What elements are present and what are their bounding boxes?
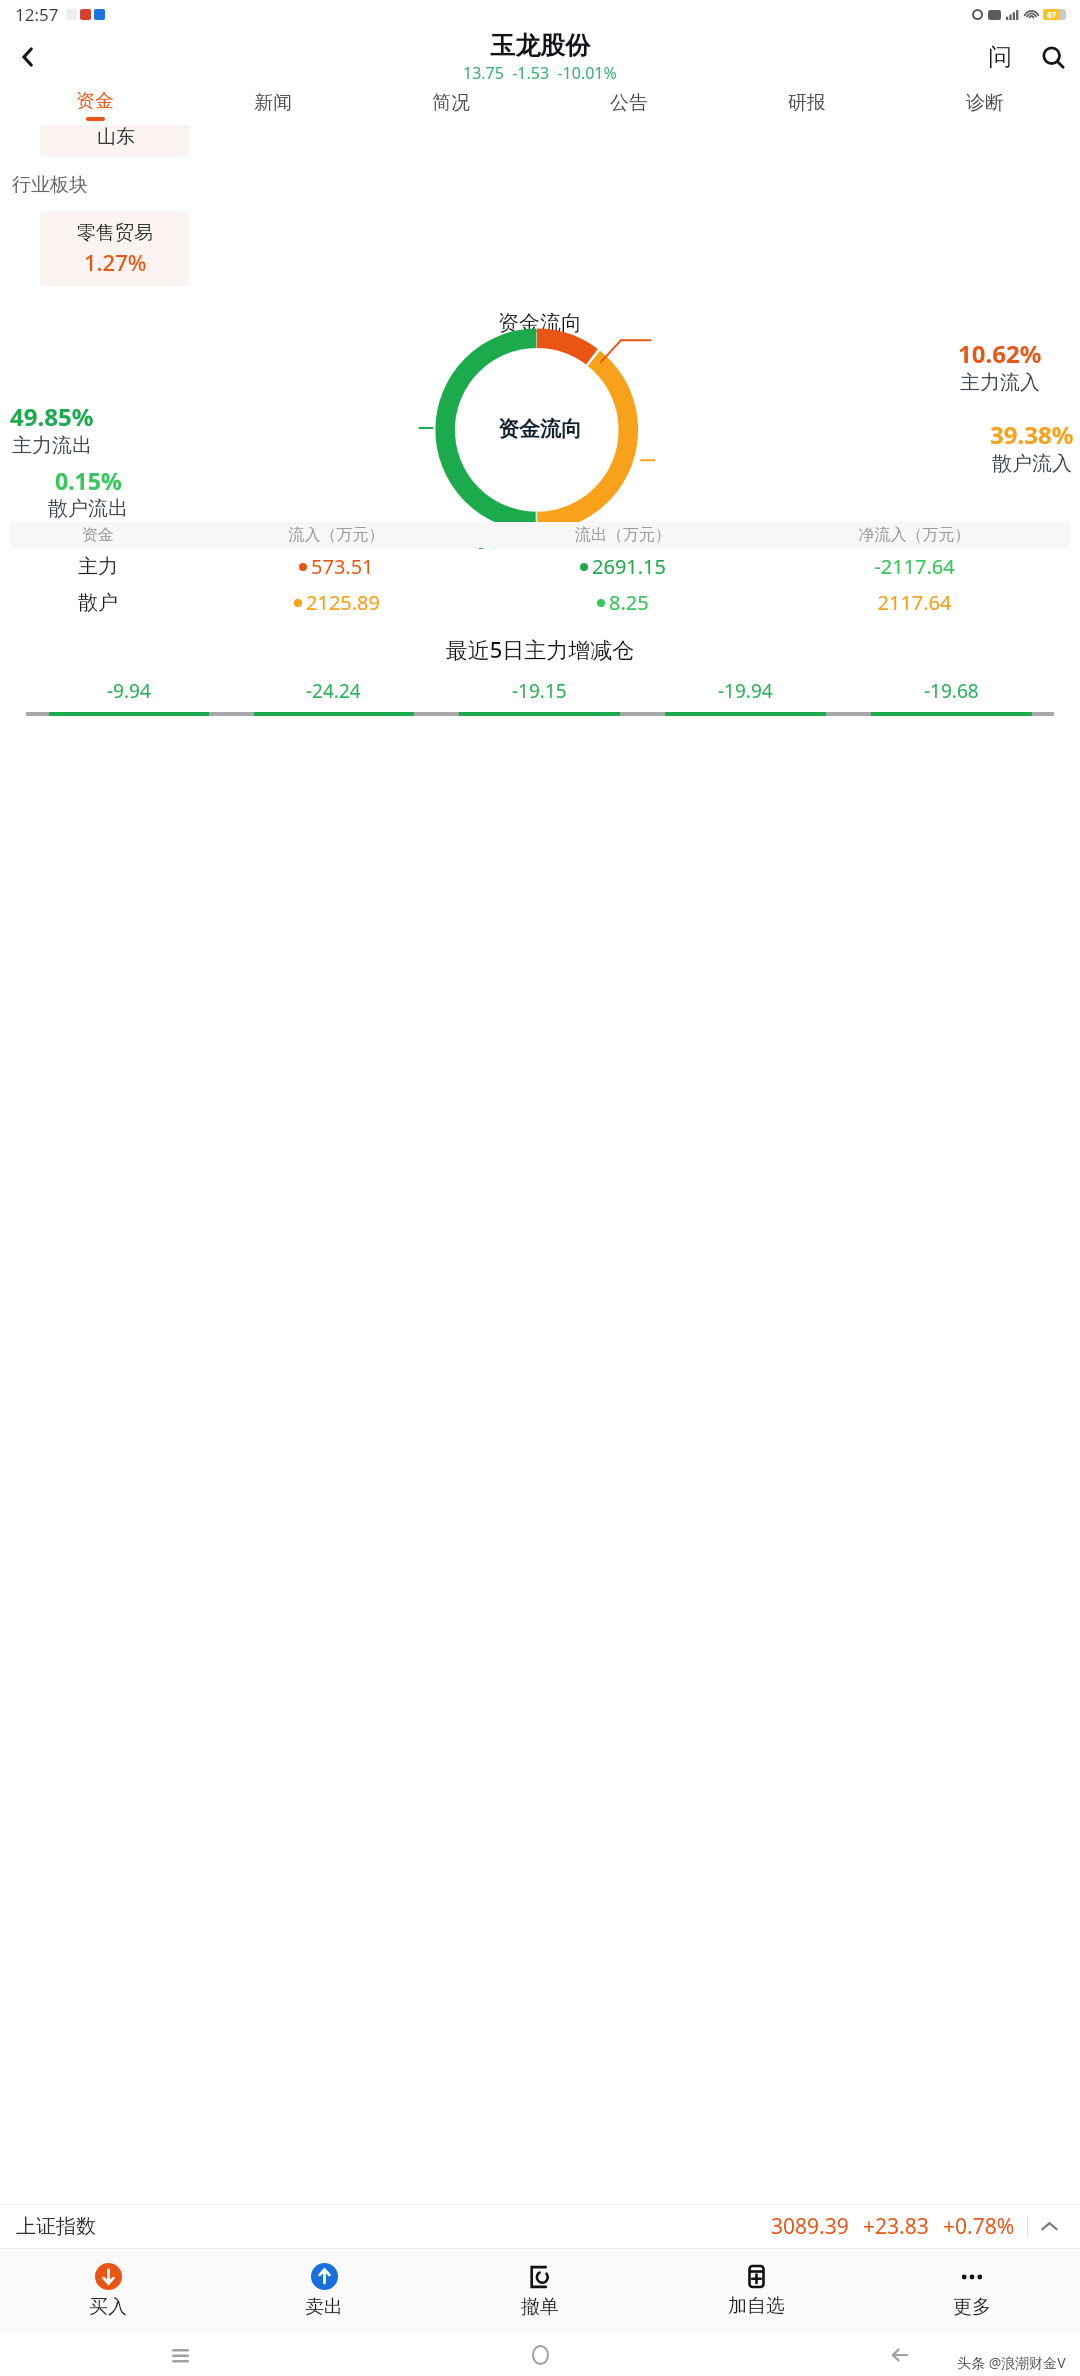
staticText: -19.15 [512, 678, 567, 704]
staticText: 3089.39 [771, 2212, 849, 2241]
staticText: +23.83 [863, 2212, 929, 2241]
staticText: -24.24 [306, 678, 361, 704]
button[interactable]: 买入 [0, 2248, 216, 2334]
staticText: 诊断 [966, 91, 1004, 115]
staticText: 主力流入 [960, 370, 1040, 395]
staticText: 净流入（万元） [759, 525, 1070, 545]
staticText: -2117.64 [759, 553, 1070, 580]
staticText: 49.85% [10, 400, 94, 433]
staticText: 散户流入 [992, 451, 1072, 476]
staticText: 山东 [97, 125, 135, 149]
staticText: 公告 [610, 91, 648, 115]
button[interactable]: Ask [974, 31, 1026, 83]
staticText: 新闻 [254, 91, 292, 115]
staticText: 头条 @浪潮财金V [957, 2353, 1066, 2372]
staticText: 流入（万元） [186, 525, 487, 545]
staticText: 1.27% [84, 247, 147, 277]
button[interactable]: 新闻 [184, 85, 362, 125]
staticText: 12:57 [15, 3, 59, 26]
button[interactable]: 山东 [40, 125, 190, 157]
staticText: 10.62% [958, 337, 1042, 370]
button[interactable]: 公告 [540, 85, 718, 125]
staticText: 问 [988, 42, 1012, 72]
staticText: 2691.15 [592, 553, 666, 580]
button[interactable]: 零售贸易 [40, 211, 190, 286]
staticText: 主力流出 [12, 433, 92, 458]
button[interactable]: 撤单 [432, 2248, 648, 2334]
staticText: -19.68 [924, 678, 979, 704]
staticText: 买入 [89, 2295, 127, 2319]
staticText: 零售贸易 [77, 221, 153, 245]
button[interactable]: 简况 [362, 85, 540, 125]
button[interactable]: Home [360, 2334, 720, 2376]
staticText: 主力 [10, 554, 186, 579]
staticText: 散户 [10, 590, 186, 615]
staticText: -9.94 [107, 678, 151, 704]
button[interactable]: Back [720, 2334, 1080, 2376]
staticText: 资金 [76, 89, 114, 113]
staticText: 0.15% [55, 465, 122, 496]
staticText: +0.78% [943, 2212, 1015, 2241]
staticText: 卖出 [305, 2295, 343, 2319]
staticText: 加自选 [728, 2294, 785, 2318]
staticText: 573.51 [311, 553, 374, 580]
staticText: 行业板块 [12, 173, 88, 197]
button[interactable]: Back [0, 29, 56, 85]
button[interactable]: 卖出 [216, 2248, 432, 2334]
staticText: 8.25 [609, 589, 649, 616]
button[interactable]: 资金 [6, 85, 184, 125]
button[interactable]: 更多 [864, 2248, 1080, 2334]
staticText: 2125.89 [306, 589, 380, 616]
staticText: 上证指数 [16, 2214, 96, 2239]
staticText: 简况 [432, 91, 470, 115]
staticText: 撤单 [521, 2295, 559, 2319]
button[interactable]: 加自选 [648, 2248, 864, 2334]
staticText: 散户流出 [48, 496, 128, 521]
button[interactable]: 诊断 [896, 85, 1074, 125]
staticText: 研报 [788, 91, 826, 115]
staticText: 更多 [953, 2295, 991, 2319]
button[interactable]: 研报 [718, 85, 896, 125]
staticText: 流出（万元） [487, 525, 759, 545]
staticText: 资金流向 [0, 310, 1080, 336]
button[interactable]: Search [1026, 30, 1080, 84]
button[interactable]: Recents [0, 2334, 360, 2376]
staticText: 资金流向 [498, 416, 582, 442]
staticText: 最近5日主力增减仓 [0, 634, 1080, 664]
button[interactable]: Expand [1028, 2205, 1070, 2247]
staticText: 67 [1047, 9, 1057, 20]
staticText: 玉龙股份 [490, 30, 590, 61]
staticText: 13.75 -1.53 -10.01% [463, 62, 617, 84]
staticText: 39.38% [990, 418, 1074, 451]
staticText: 资金 [10, 525, 186, 545]
staticText: 2117.64 [759, 589, 1070, 616]
staticText: -19.94 [718, 678, 773, 704]
